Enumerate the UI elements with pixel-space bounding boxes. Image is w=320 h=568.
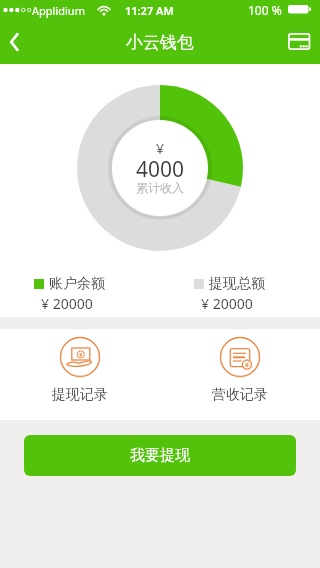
staticText: 4000 <box>136 155 185 184</box>
staticText: 11:27 AM <box>125 3 174 18</box>
staticText: 我要提现 <box>130 446 190 465</box>
staticText: ¥ 20000 <box>41 294 93 313</box>
staticText: 营收记录 <box>212 386 268 404</box>
staticText: ¥ 20000 <box>201 294 253 313</box>
staticText: 提现总额 <box>209 275 265 293</box>
button[interactable]: 营收记录 <box>180 335 300 410</box>
button[interactable]: 提现记录 <box>20 335 140 410</box>
staticText: ¥ <box>156 139 165 158</box>
button[interactable] <box>278 20 320 64</box>
button[interactable] <box>0 20 44 64</box>
staticText: 提现记录 <box>52 386 108 404</box>
staticText: 100 % <box>248 2 282 18</box>
staticText: Applidium <box>32 3 85 18</box>
staticText: 累计收入 <box>136 180 184 195</box>
button[interactable]: 我要提现 <box>24 435 296 476</box>
staticText: 小云钱包 <box>126 32 194 53</box>
staticText: 账户余额 <box>49 275 105 293</box>
